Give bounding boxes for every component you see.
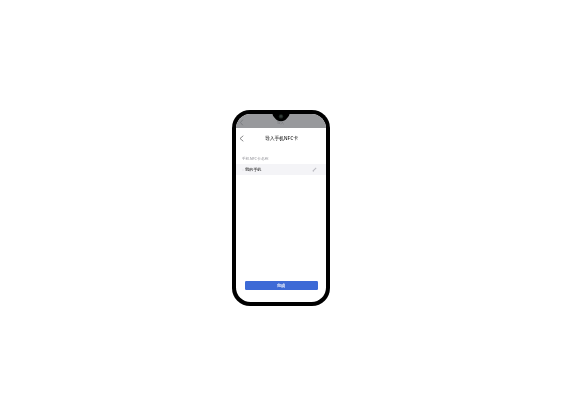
staticText: 导入手机NFC卡 [265, 135, 298, 141]
staticText: 完成 [277, 283, 286, 288]
button[interactable]: 完成 [245, 281, 318, 290]
button[interactable]: Back [237, 132, 245, 144]
staticText: 导入 [277, 121, 285, 126]
staticText: 手机NFC卡名称 [242, 156, 269, 161]
staticText: 我的手机 [245, 167, 262, 172]
button[interactable]: 我的手机 [236, 164, 326, 175]
